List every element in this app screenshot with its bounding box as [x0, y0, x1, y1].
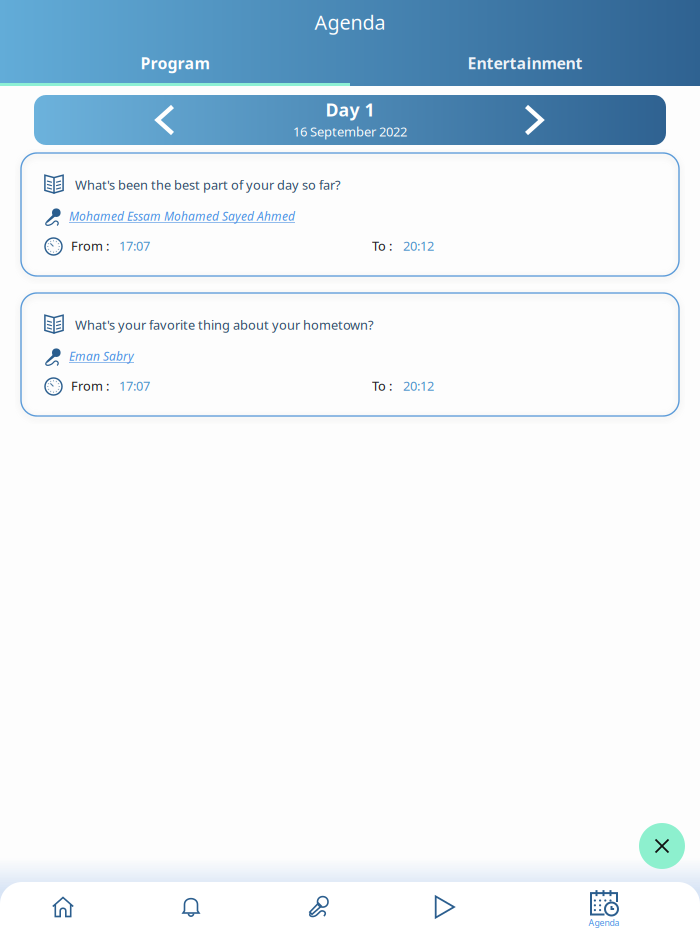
- staticText: Agenda: [314, 9, 385, 35]
- button[interactable]: Notifications: [156, 887, 226, 927]
- button[interactable]: Live: [410, 887, 480, 927]
- staticText: What's been the best part of your day so…: [75, 176, 341, 193]
- staticText: Day 1: [325, 98, 374, 122]
- staticText: To :: [372, 237, 392, 254]
- staticText: From :: [71, 377, 109, 394]
- button[interactable]: Speakers: [283, 887, 353, 927]
- button[interactable]: What's your favorite thing about your ho…: [21, 293, 679, 416]
- staticText: 16 September 2022: [293, 123, 407, 140]
- staticText: Eman Sabry: [69, 348, 134, 364]
- staticText: Agenda: [588, 916, 619, 928]
- staticText: 17:07: [119, 377, 150, 394]
- staticText: To :: [372, 377, 392, 394]
- button[interactable]: Home: [28, 887, 98, 927]
- button[interactable]: Entertainment: [350, 47, 700, 79]
- staticText: From :: [71, 237, 109, 254]
- button[interactable]: Close: [639, 823, 685, 869]
- staticText: 20:12: [403, 377, 434, 394]
- button[interactable]: What's been the best part of your day so…: [21, 153, 679, 276]
- button[interactable]: Program: [0, 47, 350, 79]
- staticText: Mohamed Essam Mohamed Sayed Ahmed: [69, 208, 295, 224]
- staticText: 20:12: [403, 237, 434, 254]
- button[interactable]: Previous day: [140, 95, 190, 145]
- button[interactable]: Agenda: [569, 885, 639, 933]
- staticText: 17:07: [119, 237, 150, 254]
- staticText: What's your favorite thing about your ho…: [75, 316, 374, 333]
- button[interactable]: Next day: [509, 95, 559, 145]
- staticText: Entertainment: [467, 52, 582, 74]
- staticText: Program: [140, 52, 209, 74]
